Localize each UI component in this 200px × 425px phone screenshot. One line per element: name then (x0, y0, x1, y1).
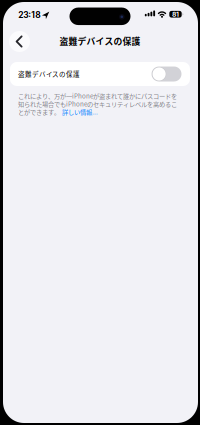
staticText: これにより、万が一iPhoneが盗まれて誰かにパスコードを (18, 91, 177, 100)
staticText: 23:18 (18, 10, 40, 20)
staticText: 詳しい情報... (62, 107, 98, 116)
staticText: 81 (172, 10, 179, 18)
staticText: 盗難デバイスの保護 (18, 69, 80, 79)
staticText: とができます。 (18, 107, 60, 116)
button[interactable]: 盗難デバイスの保護 (10, 62, 190, 86)
staticText: 知られた場合でもiPhoneのセキュリティレベルを高めるこ (18, 99, 177, 108)
staticText: 盗難デバイスの保護 (59, 35, 140, 47)
button[interactable]: Back (9, 31, 30, 52)
button[interactable]: 詳しい情報... (62, 107, 98, 116)
